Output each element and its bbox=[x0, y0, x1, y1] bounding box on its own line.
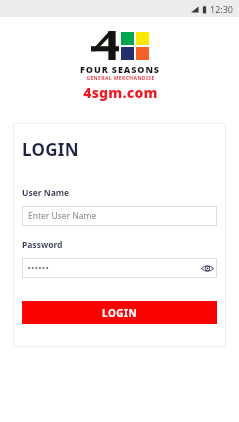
button[interactable]: Show password bbox=[197, 258, 217, 278]
staticText: GENERAL MERCHANDISE bbox=[86, 75, 155, 82]
staticText: FOUR SEASONS bbox=[80, 63, 160, 75]
staticText: Password bbox=[22, 239, 63, 251]
button[interactable]: LOGIN bbox=[22, 301, 217, 324]
button[interactable]: Enter User Name bbox=[22, 206, 217, 226]
staticText: User Name bbox=[22, 187, 70, 199]
button[interactable]: Show password bbox=[22, 258, 217, 278]
staticText: LOGIN bbox=[102, 306, 138, 320]
staticText: LOGIN bbox=[22, 138, 79, 161]
staticText: 12:30 bbox=[210, 3, 234, 15]
staticText: Enter User Name bbox=[28, 210, 97, 222]
staticText: 4sgm.com bbox=[83, 83, 158, 102]
